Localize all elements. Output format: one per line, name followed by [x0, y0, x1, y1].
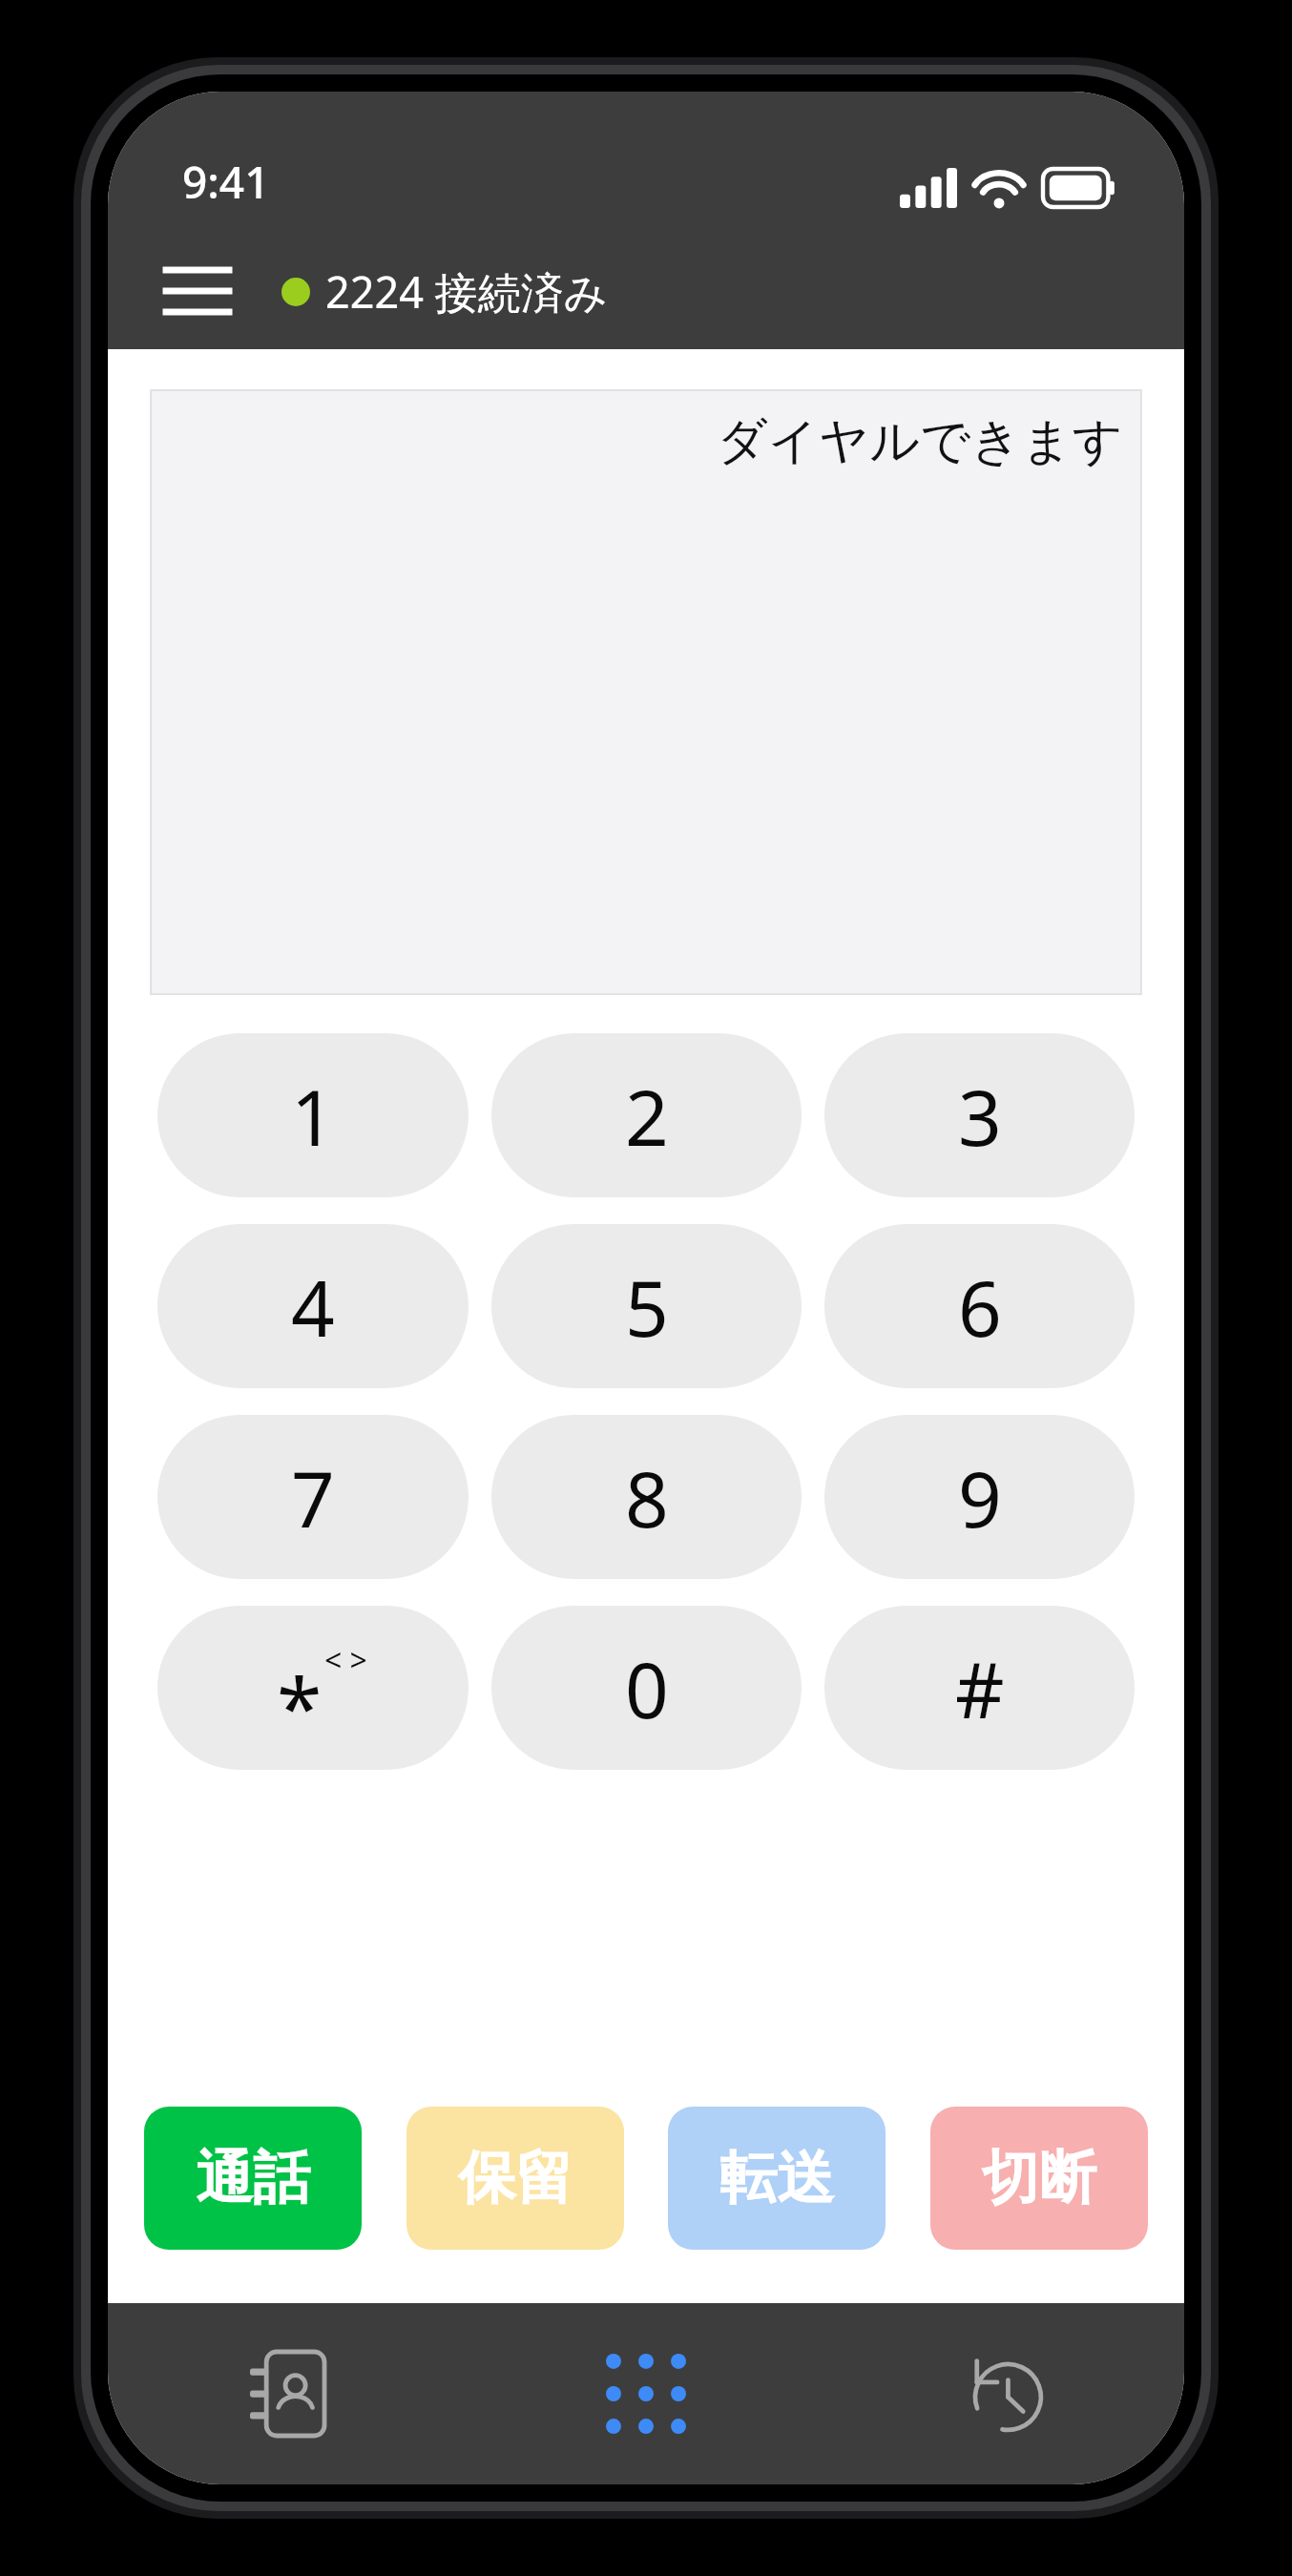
button[interactable]: 保留 [406, 2107, 624, 2250]
button[interactable]: 9 [824, 1415, 1135, 1579]
button[interactable]: 1 [157, 1033, 469, 1197]
staticText: 8 [625, 1445, 669, 1549]
button[interactable]: 7 [157, 1415, 469, 1579]
staticText: 0 [625, 1636, 669, 1740]
button[interactable]: Contacts [108, 2303, 467, 2484]
button[interactable]: 4 [157, 1224, 469, 1388]
button[interactable]: # [824, 1606, 1135, 1770]
button[interactable]: Menu [154, 247, 241, 335]
staticText: 2 [625, 1064, 669, 1168]
staticText: 切断 [982, 2142, 1096, 2214]
button[interactable]: 切断 [930, 2107, 1148, 2250]
button[interactable]: History [825, 2303, 1184, 2484]
staticText: * [277, 1650, 323, 1761]
staticText: 通話 [196, 2142, 310, 2214]
button[interactable]: Dialpad [467, 2303, 825, 2484]
button[interactable]: 通話 [144, 2107, 362, 2250]
button[interactable]: ダイヤルできます [150, 389, 1142, 995]
staticText: 9:41 [182, 152, 270, 212]
button[interactable]: 0 [491, 1606, 802, 1770]
staticText: 2224 接続済み [325, 262, 608, 321]
button[interactable]: 5 [491, 1224, 802, 1388]
staticText: 7 [291, 1445, 335, 1549]
staticText: 転送 [719, 2142, 834, 2214]
staticText: # [955, 1636, 1005, 1740]
staticText: < > [324, 1639, 367, 1681]
staticText: 1 [291, 1064, 335, 1168]
button[interactable]: 転送 [668, 2107, 886, 2250]
button[interactable]: * [157, 1606, 469, 1770]
button[interactable]: 3 [824, 1033, 1135, 1197]
staticText: ダイヤルできます [717, 410, 1123, 473]
staticText: 6 [958, 1255, 1002, 1359]
staticText: 5 [625, 1255, 669, 1359]
staticText: 9 [958, 1445, 1002, 1549]
button[interactable]: 6 [824, 1224, 1135, 1388]
button[interactable]: 2 [491, 1033, 802, 1197]
staticText: 保留 [458, 2142, 573, 2214]
staticText: 4 [291, 1255, 335, 1359]
staticText: 3 [958, 1064, 1002, 1168]
button[interactable]: 8 [491, 1415, 802, 1579]
